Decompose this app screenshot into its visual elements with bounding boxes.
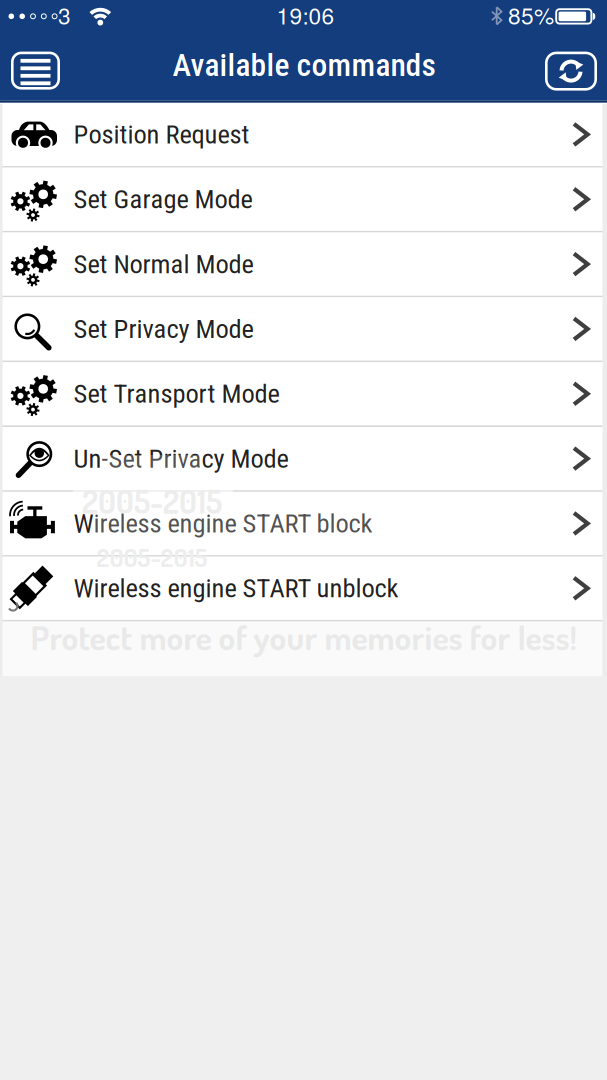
staticText: Set Transport Mode (73, 378, 279, 409)
button[interactable]: Position Request (0, 103, 607, 168)
staticText: 85% (508, 0, 554, 31)
staticText: Wireless engine START unblock (73, 573, 398, 604)
button[interactable]: Set Transport Mode (0, 362, 607, 427)
staticText: Set Privacy Mode (73, 313, 253, 344)
button[interactable]: Un-Set Privacy Mode (0, 427, 607, 492)
staticText: Un-Set Privacy Mode (73, 443, 288, 474)
button[interactable]: Refresh (545, 52, 597, 91)
button[interactable]: Set Garage Mode (0, 168, 607, 232)
staticText: 19:06 (276, 0, 334, 31)
staticText: 3 (58, 0, 71, 31)
staticText: 2005-2015 (82, 481, 222, 521)
button[interactable]: Wireless engine START unblock (0, 557, 607, 621)
staticText: Position Request (73, 119, 249, 150)
staticText: 2005-2015 (96, 541, 207, 573)
staticText: Set Garage Mode (73, 184, 252, 215)
staticText: Set Normal Mode (73, 249, 253, 280)
button[interactable]: Wireless engine START block (0, 492, 607, 557)
button[interactable]: Set Normal Mode (0, 232, 607, 297)
button[interactable]: Set Privacy Mode (0, 297, 607, 362)
staticText: Available commands (172, 47, 435, 84)
staticText: Protect more of your memories for less! (30, 615, 576, 658)
staticText: Wireless engine START block (73, 508, 372, 539)
button[interactable]: Menu (11, 52, 60, 90)
